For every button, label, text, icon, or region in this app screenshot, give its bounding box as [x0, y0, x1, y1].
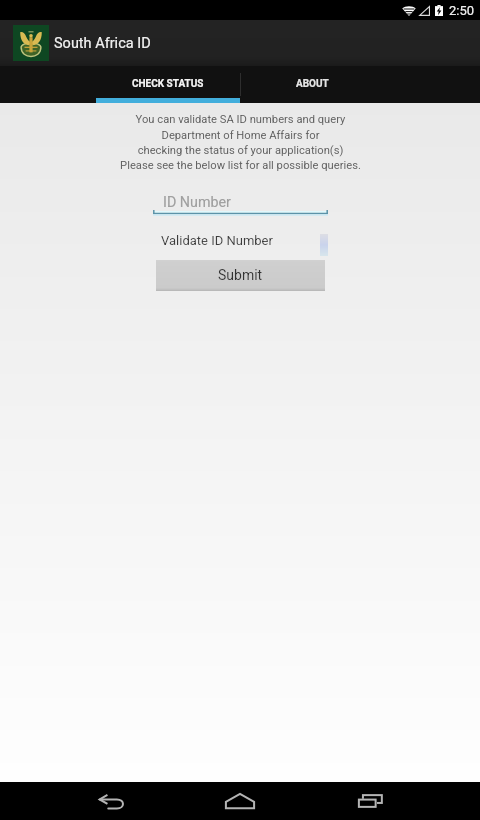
- staticText: 2:50: [449, 3, 475, 18]
- button[interactable]: Validate ID Number: [153, 228, 328, 252]
- button[interactable]: CHECK STATUS: [96, 66, 240, 103]
- button[interactable]: Back: [81, 782, 141, 820]
- button[interactable]: Home: [210, 782, 270, 820]
- staticText: CHECK STATUS: [132, 78, 204, 90]
- staticText: Validate ID Number: [161, 233, 273, 248]
- staticText: South Africa ID: [54, 35, 151, 52]
- button[interactable]: Submit: [156, 260, 325, 291]
- staticText: ID Number: [163, 194, 231, 211]
- staticText: You can validate SA ID numbers and query…: [120, 113, 361, 172]
- staticText: Submit: [218, 267, 263, 283]
- staticText: ABOUT: [296, 78, 329, 90]
- button[interactable]: Recent apps: [340, 782, 400, 820]
- button[interactable]: ID Number: [153, 188, 328, 217]
- button[interactable]: ABOUT: [240, 66, 384, 103]
